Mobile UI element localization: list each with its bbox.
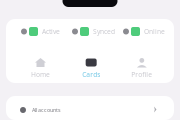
button[interactable]: Active — [21, 27, 72, 36]
button[interactable]: Cards — [73, 58, 123, 81]
button[interactable]: Profile — [123, 58, 174, 81]
button[interactable]: All accounts — [6, 96, 174, 114]
staticText: Cards — [82, 70, 100, 79]
button[interactable]: Synced — [72, 27, 123, 36]
staticText: Profile — [131, 70, 152, 79]
staticText: Synced — [93, 27, 115, 36]
button[interactable]: Home — [22, 58, 73, 81]
staticText: Online — [144, 27, 165, 36]
staticText: Active — [42, 27, 60, 36]
button[interactable]: Online — [123, 27, 174, 36]
staticText: Home — [31, 70, 50, 79]
staticText: All accounts — [32, 106, 61, 114]
